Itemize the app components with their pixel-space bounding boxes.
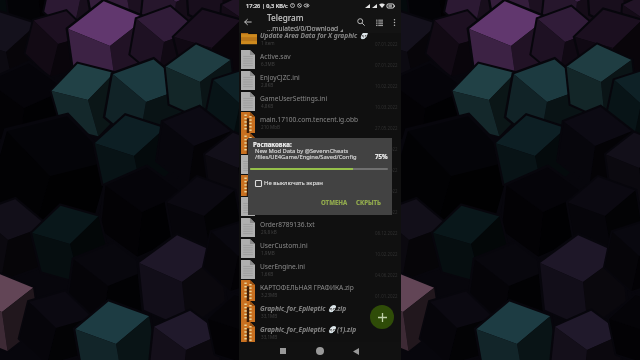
button[interactable]: Graphic_for_Epileptic 💀.zip [239, 301, 401, 322]
staticText: Active.sav [260, 52, 291, 61]
staticText: 1 item [261, 40, 275, 46]
staticText: Order8789136.txt [260, 220, 315, 229]
staticText: 11.04.2022 [375, 146, 398, 152]
staticText: /files/UE4Game/Engine/Saved/Config [255, 153, 357, 161]
button[interactable]: UserEngine.ini [239, 259, 401, 280]
staticText: 13.04.2022 [375, 167, 398, 173]
staticText: 10.02.2022 [375, 251, 398, 257]
staticText: 10.02.2022 [375, 83, 398, 89]
staticText: main.17100.com.tencent.ig.obb [260, 115, 359, 124]
staticText: 04.06.2022 [375, 272, 398, 278]
staticText: 07.01.2022 [375, 62, 398, 68]
staticText: 27.05.2022 [375, 125, 398, 131]
button[interactable]: Old_Engine.ini [239, 196, 401, 217]
button[interactable]: КАРТОФЕЛЬНАЯ ГРАФИКА.zip [239, 280, 401, 301]
button[interactable]: View mode [370, 13, 388, 31]
staticText: 1,6KB [261, 271, 274, 277]
staticText: 02.05.2022 [375, 188, 398, 194]
button[interactable]: Mod_Data_Files.zip [239, 133, 401, 154]
staticText: 1,9MB [261, 250, 275, 256]
button[interactable]: Active.sav [239, 49, 401, 70]
staticText: КАРТОФЕЛЬНАЯ ГРАФИКА.zip [260, 283, 354, 292]
button[interactable]: ОТМЕНА [318, 195, 351, 209]
button[interactable]: GameUserSettings.ini [239, 91, 401, 112]
staticText: New Mod Data by @SevennCheats [255, 147, 349, 155]
button[interactable]: СКРЫТЬ [353, 195, 385, 209]
staticText: 2,1KB [261, 166, 274, 172]
staticText: СКРЫТЬ [356, 198, 382, 206]
staticText: NewConfig.ini [260, 157, 304, 166]
button[interactable]: Home [313, 344, 327, 358]
staticText: Не выключать экран [264, 179, 323, 187]
staticText: 29,8 kB [261, 229, 277, 235]
staticText: UserEngine.ini [260, 262, 305, 271]
staticText: 17:26 | 0,3 KB/c [246, 2, 288, 10]
button[interactable]: Graphic_for_Epileptic 💀 (1).zip [239, 322, 401, 343]
staticText: GameUserSettings.ini [260, 94, 328, 103]
button[interactable]: Add [370, 305, 394, 329]
staticText: 6,3MB [261, 61, 275, 67]
staticText: 21.05.2022 [375, 209, 398, 215]
button[interactable]: Recents [276, 344, 290, 358]
staticText: 75% [375, 152, 388, 160]
staticText: Telegram [267, 12, 304, 23]
staticText: Mod_Data_Files.zip [260, 136, 319, 145]
staticText: 07.01.2022 [375, 41, 398, 47]
staticText: ...mulated/0/Download [267, 24, 339, 33]
staticText: Update Area Data for X graphic 💀 [260, 31, 368, 40]
button[interactable]: Back [349, 344, 363, 358]
staticText: 3,23MB [261, 292, 278, 298]
staticText: 33,1MB [261, 334, 278, 340]
staticText: Распаковка: [253, 140, 292, 148]
button[interactable]: OBB_backup.zip [239, 175, 401, 196]
staticText: 33,1MB [261, 313, 278, 319]
staticText: 08.12.2022 [375, 230, 398, 236]
staticText: Graphic_for_Epileptic 💀.zip [260, 304, 347, 313]
staticText: 18,4MB [261, 145, 278, 151]
button[interactable]: Update Area Data for X graphic 💀 [239, 28, 401, 49]
staticText: 01.01.2022 [375, 293, 398, 299]
button[interactable]: Search [352, 13, 370, 31]
staticText: UserCustom.ini [260, 241, 308, 250]
staticText: 2,8KB [261, 82, 274, 88]
button[interactable]: UserCustom.ini [239, 238, 401, 259]
button[interactable]: More options [388, 16, 401, 29]
button[interactable]: main.17100.com.tencent.ig.obb [239, 112, 401, 133]
button[interactable]: Не выключать экран [253, 177, 325, 189]
staticText: 4,8KB [261, 103, 274, 109]
staticText: EnjoyCJZC.ini [260, 73, 300, 82]
staticText: OBB_backup.zip [260, 178, 310, 187]
button[interactable]: EnjoyCJZC.ini [239, 70, 401, 91]
button[interactable]: Back [241, 15, 255, 29]
staticText: Graphic_for_Epileptic 💀 (1).zip [260, 325, 357, 334]
button[interactable]: NewConfig.ini [239, 154, 401, 175]
staticText: 10.03.2022 [375, 104, 398, 110]
staticText: ОТМЕНА [321, 198, 348, 206]
staticText: 210 MbB [261, 124, 281, 130]
button[interactable]: Order8789136.txt [239, 217, 401, 238]
